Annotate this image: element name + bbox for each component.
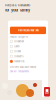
staticText: Recipes & Restaurants <box>5 4 30 7</box>
staticText: Delivery available nearby <box>10 66 36 68</box>
staticText: Breakfast <box>14 40 24 43</box>
staticText: Favourites <box>14 60 24 63</box>
button[interactable]: Desserts <box>10 54 46 59</box>
staticText: Find recipes near you <box>17 29 38 32</box>
button[interactable]: Lunch <box>10 44 46 49</box>
staticText: Lunch <box>14 45 19 48</box>
button[interactable]: Save <box>44 87 50 96</box>
staticText: SAVE <box>45 92 49 94</box>
staticText: Desserts <box>14 55 23 58</box>
button[interactable]: Find recipes near you <box>10 27 46 34</box>
staticText: for your family <box>5 8 30 13</box>
staticText: Popular categories <box>10 36 28 38</box>
staticText: See all restaurants <box>10 70 29 73</box>
button[interactable]: Dinner <box>10 49 46 54</box>
button[interactable]: Breakfast <box>10 39 46 44</box>
button[interactable]: Favourites <box>10 59 46 64</box>
staticText: Dinner <box>14 50 21 53</box>
